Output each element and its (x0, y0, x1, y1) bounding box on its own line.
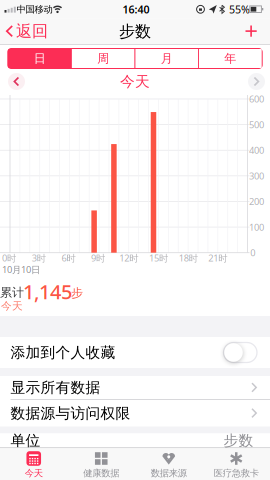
button[interactable]: 月 (135, 49, 198, 68)
staticText: 今天 (25, 467, 43, 479)
staticText: 6时 (61, 252, 75, 264)
staticText: 12时 (119, 252, 138, 264)
staticText: 周 (97, 51, 109, 66)
staticText: 健康数据 (83, 467, 119, 479)
staticText: 15时 (149, 252, 168, 264)
button[interactable]: 年 (199, 49, 262, 68)
staticText: 单位 (10, 431, 40, 449)
staticText: 1,145 (23, 278, 72, 305)
staticText: 400 (249, 144, 264, 156)
staticText: 中国移动 (16, 4, 52, 15)
staticText: 200 (249, 195, 264, 208)
staticText: 步 (71, 286, 83, 300)
staticText: 今天 (120, 72, 150, 90)
staticText: 医疗急救卡 (214, 467, 259, 479)
staticText: 100 (249, 221, 264, 233)
button[interactable]: 前一天 (8, 73, 25, 90)
staticText: 显示所有数据 (10, 379, 100, 397)
staticText: 600 (249, 93, 264, 105)
staticText: 0 (250, 246, 255, 259)
staticText: 数据来源 (151, 467, 187, 479)
button[interactable]: 日 (8, 49, 71, 68)
staticText: 月 (161, 51, 173, 66)
staticText: 21时 (208, 252, 227, 264)
staticText: 9时 (91, 252, 105, 264)
button[interactable]: 今天 (0, 448, 67, 480)
staticText: 0时 (2, 252, 16, 264)
staticText: 年 (224, 51, 236, 66)
staticText: 500 (249, 118, 264, 131)
staticText: 16:40 (122, 2, 149, 16)
staticText: 55% (229, 2, 250, 16)
staticText: 10月10日 (2, 263, 40, 276)
staticText: 添加到个人收藏 (10, 343, 115, 361)
button[interactable]: 返回 (0, 18, 48, 44)
staticText: 300 (249, 170, 264, 182)
button[interactable]: 添加数据点 (245, 25, 257, 37)
staticText: 18时 (179, 252, 198, 264)
button[interactable]: 数据来源 (135, 448, 202, 480)
button[interactable]: 数据源与访问权限 (0, 400, 270, 426)
button[interactable]: 显示所有数据 (0, 376, 270, 399)
staticText: 步数 (119, 22, 151, 41)
staticText: 步数 (223, 431, 253, 449)
staticText: 数据源与访问权限 (10, 404, 130, 422)
staticText: 返回 (16, 21, 48, 41)
staticText: 累计 (0, 285, 24, 300)
button[interactable]: 健康数据 (67, 448, 135, 480)
staticText: 3时 (32, 252, 46, 264)
button[interactable]: 周 (72, 49, 135, 68)
button[interactable]: 添加到个人收藏 (0, 337, 270, 368)
staticText: 日 (34, 51, 46, 66)
button[interactable]: 后一天 (248, 73, 265, 90)
staticText: 今天 (1, 299, 23, 312)
button[interactable]: 单位 (0, 433, 270, 447)
button[interactable]: 医疗急救卡 (202, 448, 270, 480)
